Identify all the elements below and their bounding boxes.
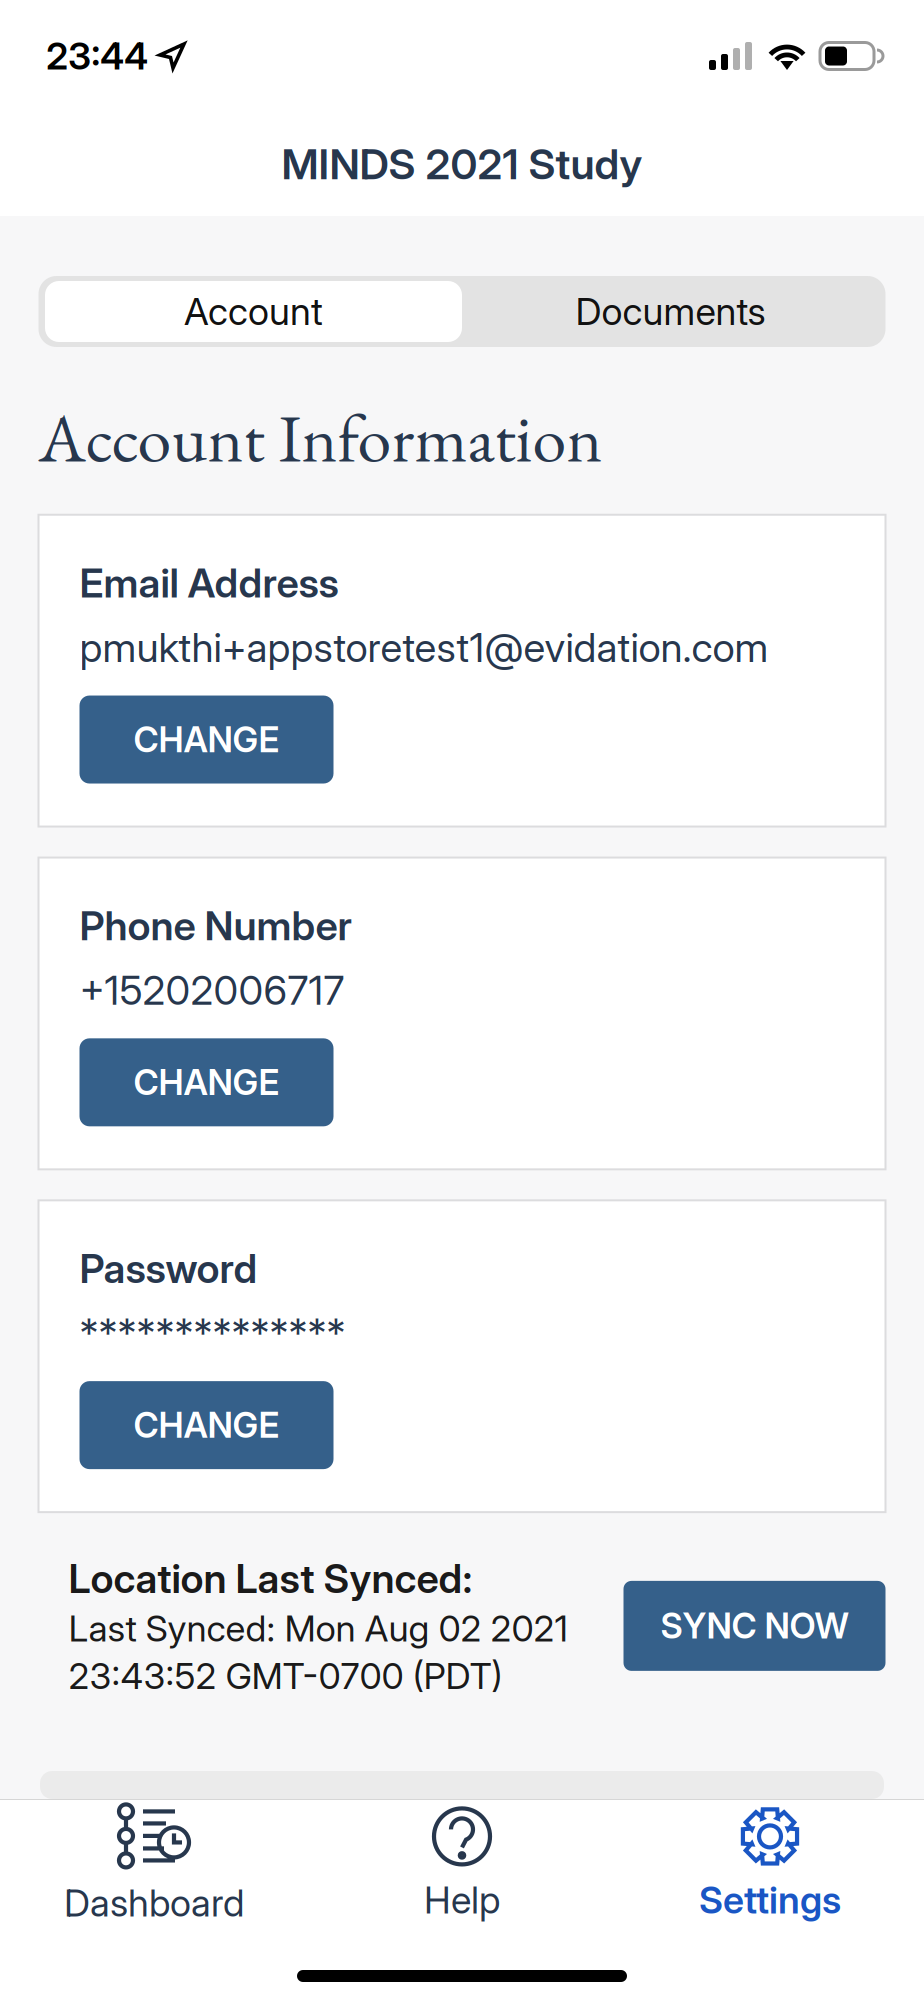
button[interactable]: CHANGE <box>79 1038 333 1126</box>
staticText: CHANGE <box>133 719 279 760</box>
button[interactable]: CHANGE <box>79 1381 333 1469</box>
button[interactable]: CHANGE <box>79 695 333 783</box>
staticText: Email Address <box>79 559 338 607</box>
staticText: Password <box>79 1244 257 1293</box>
staticText: Settings <box>699 1877 841 1923</box>
staticText: Dashboard <box>64 1880 244 1926</box>
staticText: +15202006717 <box>79 966 344 1014</box>
staticText: Last Synced: Mon Aug 02 2021 <box>68 1606 567 1650</box>
staticText: Account Information <box>38 393 602 482</box>
staticText: 23:43:52 GMT-0700 (PDT) <box>68 1654 502 1698</box>
staticText: MINDS 2021 Study <box>281 139 642 189</box>
staticText: Help <box>424 1877 500 1923</box>
staticText: CHANGE <box>133 1404 279 1446</box>
staticText: SYNC NOW <box>660 1605 848 1647</box>
staticText: Documents <box>575 289 765 334</box>
button[interactable]: Help <box>308 1805 616 1923</box>
staticText: Account <box>184 289 323 334</box>
staticText: pmukthi+appstoretest1@evidation.com <box>79 623 768 671</box>
button[interactable]: Account <box>45 281 462 342</box>
button[interactable]: Dashboard <box>0 1802 308 1926</box>
staticText: Location Last Synced: <box>68 1554 472 1602</box>
staticText: ************** <box>79 1309 345 1357</box>
staticText: 23:44 <box>46 33 148 79</box>
staticText: CHANGE <box>133 1061 279 1103</box>
button[interactable]: Settings <box>616 1805 924 1923</box>
button[interactable]: Documents <box>462 281 879 342</box>
staticText: Phone Number <box>79 901 351 950</box>
button[interactable]: SYNC NOW <box>623 1581 885 1671</box>
